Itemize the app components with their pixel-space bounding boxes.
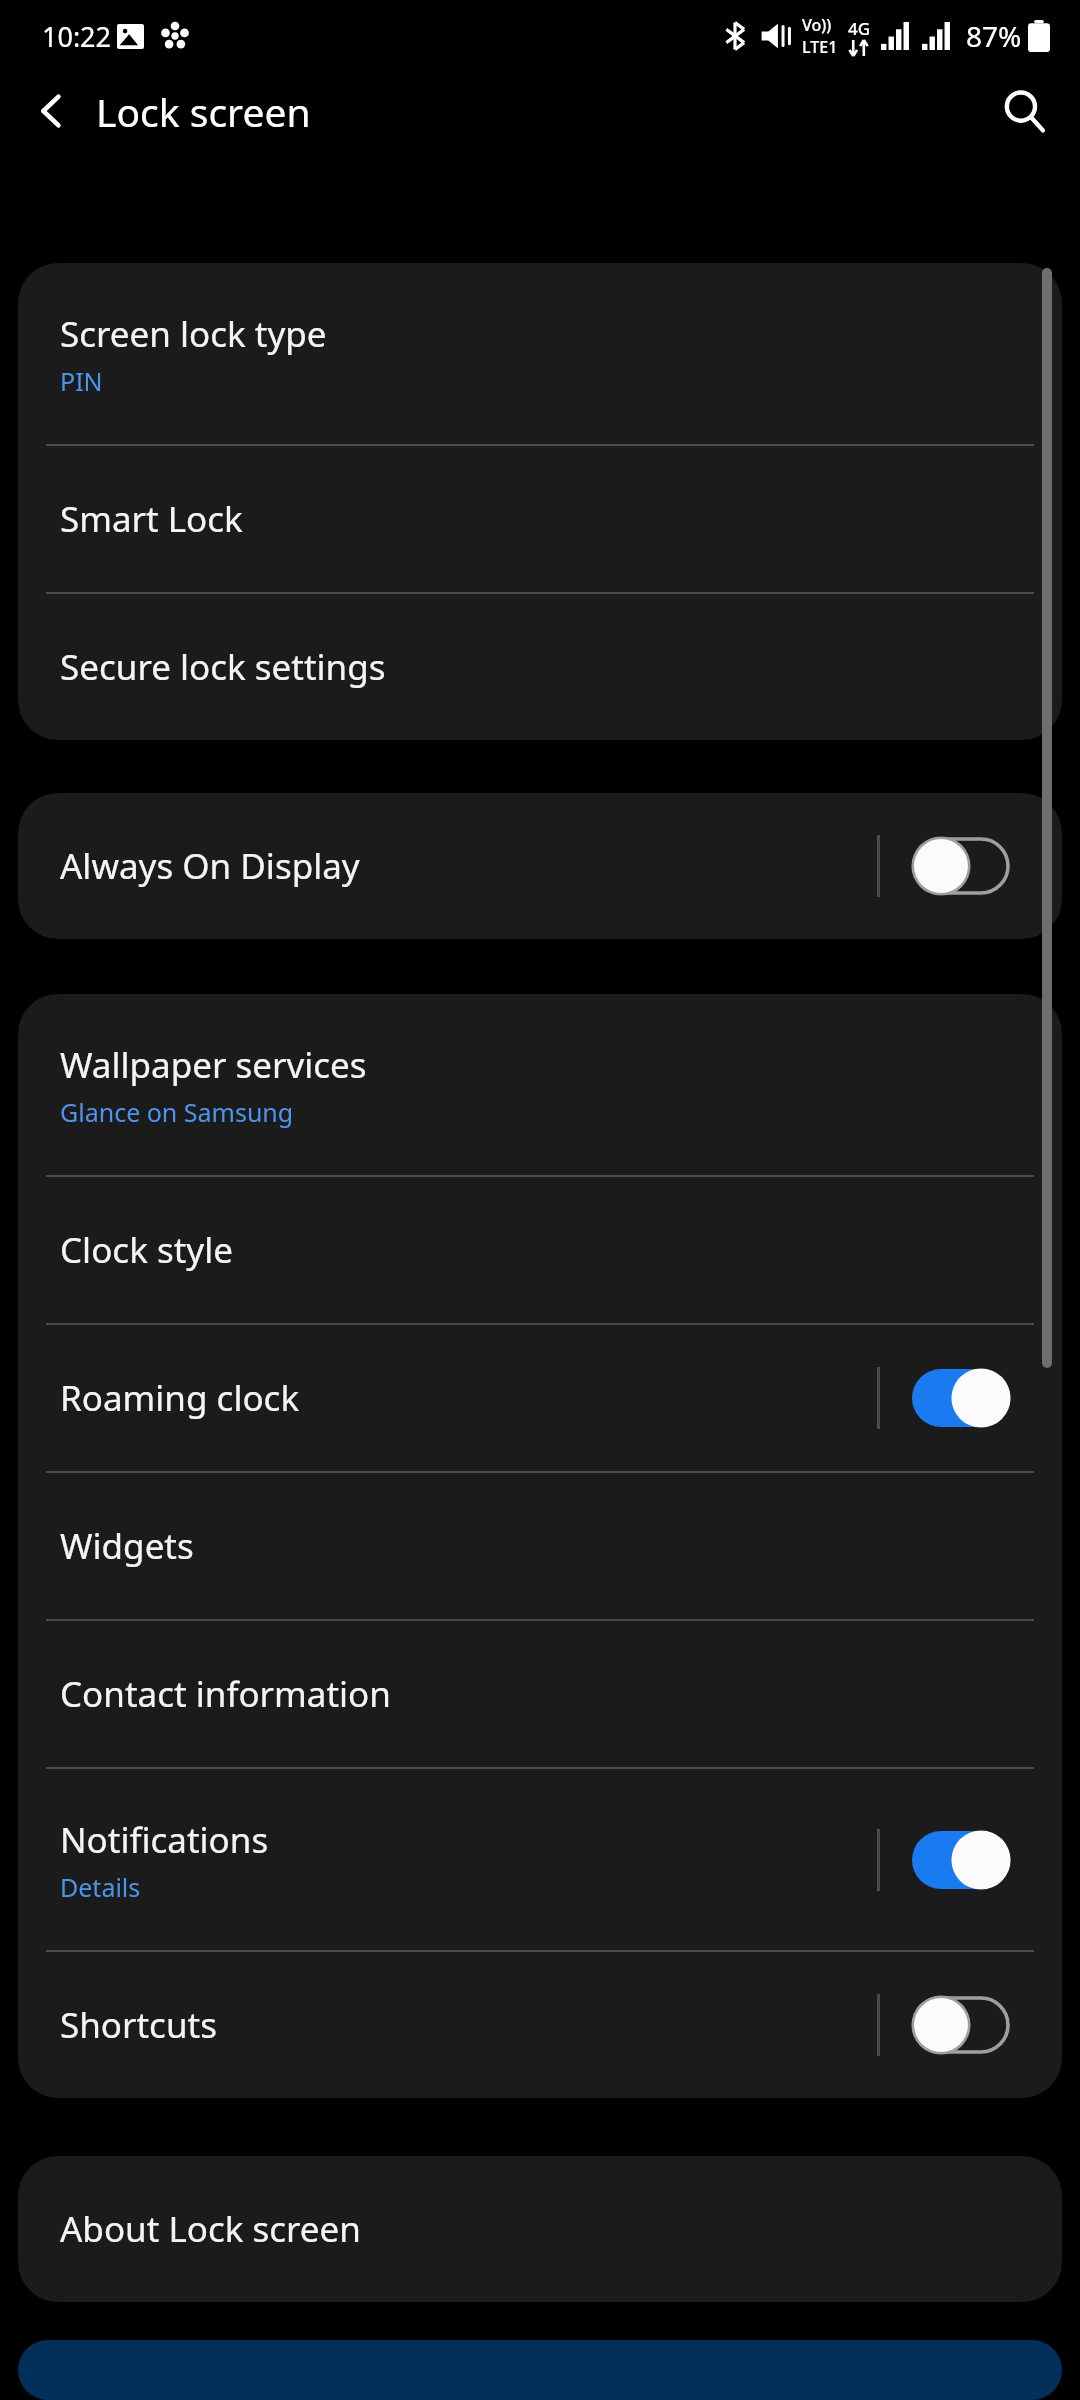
button[interactable]: Always On Display — [18, 793, 1062, 939]
button[interactable]: Wallpaper services — [18, 994, 1062, 1175]
button[interactable]: Notifications — [18, 1769, 1062, 1950]
button[interactable] — [18, 2340, 1062, 2400]
button[interactable]: Widgets — [18, 1473, 1062, 1619]
staticText: 4G — [848, 17, 871, 40]
staticText: Roaming clock — [60, 1374, 300, 1422]
button[interactable]: Shortcuts — [18, 1952, 1062, 2098]
staticText: Details — [60, 1870, 141, 1904]
staticText: Lock screen — [96, 85, 311, 138]
button[interactable]: Smart Lock — [18, 446, 1062, 592]
staticText: Contact information — [60, 1670, 391, 1718]
button[interactable]: Secure lock settings — [18, 594, 1062, 740]
staticText: Notifications — [60, 1816, 269, 1864]
staticText: Widgets — [60, 1522, 194, 1570]
button[interactable]: About Lock screen — [18, 2156, 1062, 2302]
staticText: Secure lock settings — [60, 643, 386, 691]
staticText: LTE1 — [802, 36, 838, 58]
button[interactable]: Search — [986, 73, 1062, 149]
staticText: Wallpaper services — [60, 1041, 367, 1089]
staticText: Smart Lock — [60, 495, 243, 543]
button[interactable]: Clock style — [18, 1177, 1062, 1323]
staticText: Always On Display — [60, 842, 360, 890]
button[interactable]: Back — [18, 77, 86, 145]
button[interactable]: Notifications switch — [912, 1831, 1010, 1889]
button[interactable]: Screen lock type — [18, 263, 1062, 444]
button[interactable]: Roaming clock — [18, 1325, 1062, 1471]
staticText: Screen lock type — [60, 310, 327, 358]
staticText: Shortcuts — [60, 2001, 217, 2049]
staticText: 10:22 — [42, 18, 112, 55]
button[interactable]: Shortcuts switch — [912, 1996, 1010, 2054]
button[interactable]: Contact information — [18, 1621, 1062, 1767]
staticText: PIN — [60, 364, 103, 398]
button[interactable]: Always On Display switch — [912, 837, 1010, 895]
staticText: Glance on Samsung — [60, 1095, 294, 1129]
button[interactable]: Roaming clock switch — [912, 1369, 1010, 1427]
staticText: Clock style — [60, 1226, 233, 1274]
staticText: About Lock screen — [60, 2205, 361, 2253]
staticText: Vo)) — [802, 14, 832, 36]
staticText: 87% — [966, 17, 1022, 55]
